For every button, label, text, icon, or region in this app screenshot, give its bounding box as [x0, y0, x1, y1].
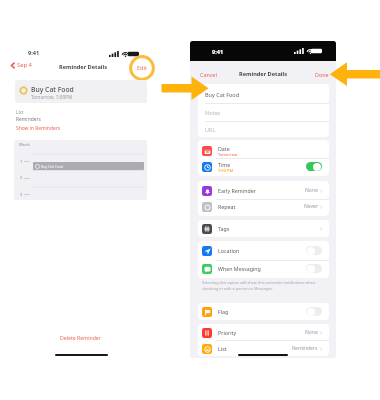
staticText: None [305, 187, 318, 194]
staticText: Location [218, 247, 240, 254]
staticText: Notes [205, 109, 221, 116]
button[interactable]: Buy Cat Food [15, 80, 147, 103]
staticText: URL [205, 126, 216, 133]
button[interactable]: Delete Reminder [60, 334, 101, 341]
button[interactable]: Cancel [200, 71, 217, 78]
button[interactable]: Location [202, 243, 322, 258]
staticText: Cancel [200, 71, 217, 78]
staticText: 9:41 [212, 48, 224, 56]
staticText: None [305, 329, 318, 336]
staticText: Tomorrow [218, 152, 238, 157]
button[interactable]: Early Reminder [202, 183, 322, 198]
button[interactable]: Sep 4 [11, 61, 32, 69]
staticText: Delete Reminder [60, 334, 101, 341]
button[interactable]: Toggle on [306, 162, 322, 171]
button[interactable]: Tags [202, 221, 322, 236]
staticText: Buy Cat Food [31, 85, 74, 94]
button[interactable]: Date [202, 143, 322, 158]
staticText: Buy Cat Food [205, 91, 240, 98]
button[interactable]: Flag [202, 304, 322, 319]
staticText: Week [19, 142, 30, 148]
staticText: Reminders [16, 116, 41, 123]
staticText: List [218, 345, 227, 352]
button[interactable]: Edit [129, 55, 155, 81]
button[interactable]: Repeat [202, 199, 322, 214]
staticText: Done [315, 71, 329, 78]
staticText: Buy Cat Food [41, 164, 64, 169]
staticText: Edit [137, 64, 148, 72]
button[interactable]: List [202, 341, 322, 356]
staticText: Time [218, 161, 231, 168]
staticText: Reminder Details [59, 63, 107, 71]
button[interactable]: When Messaging [202, 261, 322, 276]
staticText: Date [218, 145, 230, 152]
staticText: 2 [20, 175, 23, 180]
staticText: Flag [218, 308, 229, 315]
staticText: Tomorrow, 7:00PM [31, 94, 73, 100]
staticText: List [16, 109, 24, 115]
staticText: Repeat [218, 203, 236, 210]
staticText: Reminders [292, 345, 318, 352]
staticText: 9:41 [28, 49, 40, 57]
staticText: Reminder Details [239, 70, 287, 78]
staticText: Priority [218, 329, 237, 336]
button[interactable]: Done [315, 71, 329, 78]
button[interactable]: Buy Cat Food [33, 162, 144, 170]
staticText: Selecting this option will show this rem… [202, 280, 324, 291]
staticText: Never [304, 203, 318, 210]
staticText: Early Reminder [218, 187, 256, 194]
staticText: Sep 4 [17, 61, 32, 69]
button[interactable]: Toggle off [306, 307, 322, 316]
staticText: 7:00 PM [218, 168, 234, 173]
staticText: 3 [20, 192, 23, 197]
staticText: 1 [20, 159, 23, 164]
button[interactable]: Toggle off [306, 264, 322, 273]
staticText: Tags [218, 225, 230, 232]
button[interactable]: Time [202, 159, 322, 174]
button[interactable]: Show in Reminders [16, 125, 61, 132]
button[interactable]: Priority [202, 325, 322, 340]
button[interactable]: Toggle off [306, 246, 322, 255]
staticText: Show in Reminders [16, 125, 61, 132]
staticText: When Messaging [218, 265, 261, 272]
